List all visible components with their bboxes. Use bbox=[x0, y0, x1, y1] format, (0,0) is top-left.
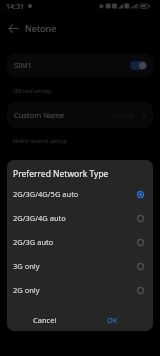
staticText: Netone bbox=[113, 111, 135, 119]
staticText: 2G/3G/4G auto bbox=[13, 213, 66, 223]
button[interactable]: 2G only bbox=[7, 278, 153, 302]
button[interactable]: SIM1 bbox=[7, 53, 153, 77]
staticText: Preferred Network Type bbox=[13, 168, 109, 180]
button[interactable]: Back bbox=[4, 19, 22, 37]
staticText: Mobile network settings bbox=[13, 138, 68, 145]
button[interactable]: 3G only bbox=[7, 254, 153, 278]
button[interactable]: Custom Name bbox=[7, 102, 153, 128]
staticText: Custom Name bbox=[14, 110, 65, 120]
staticText: Cancel bbox=[33, 315, 57, 325]
staticText: 2G/3G/4G/5G auto bbox=[13, 189, 79, 199]
staticText: OK bbox=[107, 315, 118, 325]
button[interactable]: Cancel bbox=[26, 312, 63, 327]
button[interactable]: 2G/3G auto bbox=[7, 230, 153, 254]
button[interactable]: 2G/3G/4G/5G auto bbox=[7, 182, 153, 206]
staticText: 3G only bbox=[13, 261, 40, 271]
button[interactable]: OK bbox=[96, 312, 129, 327]
staticText: SIM1 bbox=[14, 60, 32, 70]
button[interactable]: 2G/3G/4G auto bbox=[7, 206, 153, 230]
staticText: 14:31 bbox=[6, 2, 24, 12]
staticText: Netone bbox=[25, 22, 57, 34]
staticText: 2G only bbox=[13, 285, 40, 295]
staticText: 2G/3G auto bbox=[13, 237, 54, 247]
staticText: SIM card settings bbox=[13, 88, 52, 95]
